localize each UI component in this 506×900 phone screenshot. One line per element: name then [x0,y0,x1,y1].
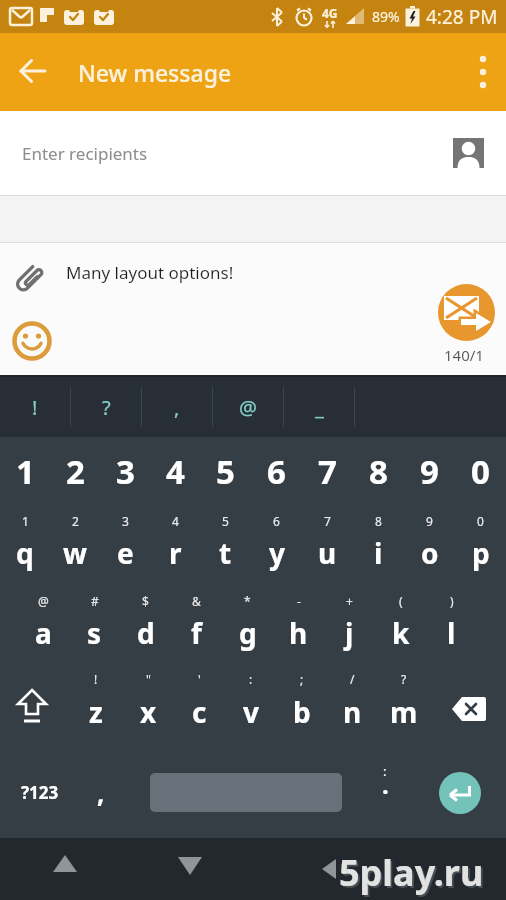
staticText: y [269,534,285,572]
button[interactable]: , [142,377,212,437]
button[interactable]: l [426,611,477,655]
staticText: z [89,693,103,731]
button[interactable]: , [78,746,124,838]
button[interactable]: v [225,690,276,734]
button[interactable]: u [302,531,353,575]
staticText: ' [198,671,201,687]
button[interactable]: : [362,746,408,838]
button[interactable] [440,679,498,739]
staticText: l [447,614,456,652]
staticText: & [192,593,201,609]
button[interactable]: g [222,611,273,655]
button[interactable]: Enter recipients [0,111,506,195]
button[interactable]: y [251,531,302,575]
button[interactable]: 5 [200,441,251,501]
button[interactable] [310,843,350,893]
button[interactable]: 1 [0,441,50,501]
button[interactable]: p [455,531,506,575]
button[interactable]: t [200,531,251,575]
staticText: d [137,614,155,652]
staticText: ! [94,671,98,687]
button[interactable]: m [378,690,429,734]
button[interactable] [453,138,484,168]
staticText: 4:28 PM [426,4,498,30]
button[interactable] [6,678,58,738]
button[interactable] [460,33,506,111]
staticText: _ [315,394,324,421]
staticText: u [318,534,337,572]
staticText: 5 [222,513,229,529]
button[interactable]: e [100,531,150,575]
button[interactable]: 3 [100,441,150,501]
button[interactable] [0,33,66,111]
staticText: # [91,593,99,609]
button[interactable]: q [0,531,50,575]
staticText: 89% [372,7,400,26]
button[interactable]: 2 [50,441,100,501]
staticText: c [192,693,207,731]
button[interactable]: b [276,690,327,734]
staticText: o [421,534,439,572]
button[interactable]: c [174,690,225,734]
button[interactable] [165,843,215,893]
staticText: 6 [273,513,280,529]
staticText: ?123 [21,781,59,804]
staticText: + [346,593,353,609]
staticText: e [117,534,134,572]
staticText: . [382,768,389,801]
staticText: f [191,614,202,652]
button[interactable] [438,284,495,341]
staticText: i [374,534,383,572]
button[interactable]: w [50,531,100,575]
staticText: 1 [16,449,35,494]
staticText: Many layout options! [66,261,234,284]
button[interactable] [11,320,53,362]
button[interactable]: z [70,690,122,734]
button[interactable]: r [150,531,200,575]
staticText: 4 [172,513,179,529]
button[interactable]: x [122,690,174,734]
button[interactable]: 7 [302,441,353,501]
staticText: 140/1 [444,345,484,365]
button[interactable]: 8 [353,441,404,501]
staticText: Enter recipients [22,142,148,165]
staticText: $ [142,593,149,609]
button[interactable]: 4 [150,441,200,501]
button[interactable]: d [120,611,171,655]
staticText: 7 [324,513,331,529]
button[interactable]: ? [71,377,141,437]
button[interactable]: f [171,611,222,655]
button[interactable]: ! [0,377,70,437]
button[interactable] [439,772,481,814]
staticText: 7 [318,449,337,494]
button[interactable]: s [69,611,120,655]
button[interactable]: @ [213,377,283,437]
staticText: m [390,693,418,731]
staticText: 6 [267,449,286,494]
button[interactable]: 0 [455,441,506,501]
staticText: j [345,614,354,652]
staticText: ) [450,593,454,609]
button[interactable]: h [273,611,324,655]
button[interactable]: i [353,531,404,575]
button[interactable] [40,843,90,893]
staticText: b [293,693,311,731]
staticText: 9 [426,513,433,529]
button[interactable]: 9 [404,441,455,501]
button[interactable]: j [324,611,375,655]
staticText: a [35,614,52,652]
button[interactable]: _ [284,377,354,437]
button[interactable]: o [404,531,455,575]
staticText: ! [32,394,38,421]
button[interactable]: k [375,611,426,655]
staticText: t [219,534,232,572]
button[interactable]: n [327,690,378,734]
staticText: " [146,671,151,687]
staticText: , [174,394,180,421]
button[interactable]: a [17,611,69,655]
staticText: ? [102,394,111,421]
staticText: p [472,534,490,572]
button[interactable]: ?123 [8,746,72,838]
button[interactable]: 6 [251,441,302,501]
